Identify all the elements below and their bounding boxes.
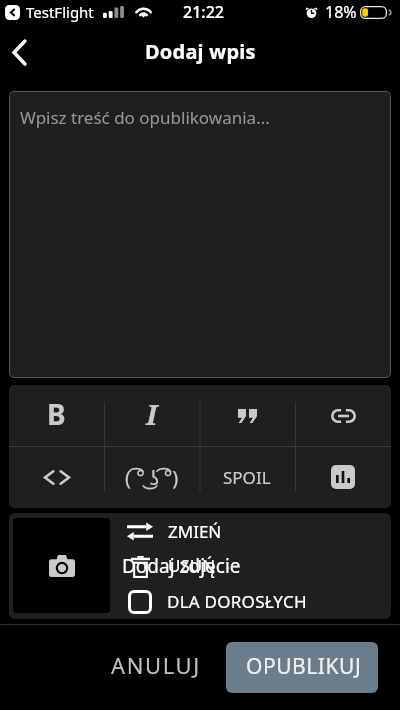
button[interactable]: Poll [295, 446, 391, 508]
staticText: SPOIL [223, 466, 271, 489]
staticText: ZMIEŃ [168, 520, 222, 543]
staticText: USUŃ [168, 554, 216, 577]
staticText: DLA DOROSŁYCH [167, 590, 307, 613]
staticText: 21:22 [183, 1, 224, 23]
button[interactable]: ZMIEŃ [118, 513, 391, 549]
staticText: Dodaj zdjęcie [122, 553, 241, 579]
button[interactable]: Code [9, 446, 104, 508]
button[interactable]: SPOIL [199, 446, 295, 508]
button[interactable]: Link [295, 385, 391, 446]
staticText: ( ͡° ͜ʖ ͡°) [125, 464, 179, 491]
button[interactable]: Wpisz treść do opublikowania... [9, 91, 391, 378]
staticText: ANULUJ [111, 650, 201, 680]
button[interactable]: Back [0, 30, 41, 74]
button[interactable]: USUŃ [118, 549, 391, 584]
button[interactable]: Bold [9, 385, 104, 446]
button[interactable]: ANULUJ [93, 642, 215, 692]
button[interactable]: OPUBLIKUJ [226, 642, 378, 693]
button[interactable]: Quote [199, 385, 295, 446]
button[interactable]: DLA DOROSŁYCH [118, 584, 391, 619]
staticText: Dodaj wpis [145, 38, 256, 65]
button[interactable]: Emoticon [104, 446, 199, 508]
button[interactable]: Add photo [13, 518, 110, 613]
button[interactable]: Italic [104, 385, 199, 446]
staticText: OPUBLIKUJ [246, 652, 362, 681]
staticText: 18% [325, 1, 357, 23]
staticText: Wpisz treść do opublikowania... [20, 106, 270, 129]
staticText: TestFlight [26, 2, 94, 22]
staticText: B [47, 395, 66, 433]
staticText: I [146, 395, 158, 433]
